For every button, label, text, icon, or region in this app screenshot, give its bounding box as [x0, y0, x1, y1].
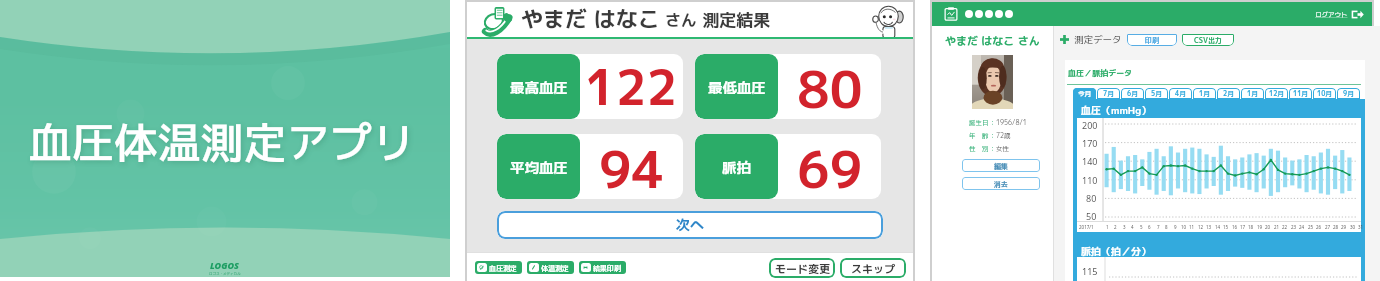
staticText: 11月 — [1293, 89, 1308, 98]
staticText: 80 — [797, 54, 863, 118]
staticText: 2 — [1114, 224, 1117, 230]
staticText: 8 — [1165, 224, 1168, 230]
staticText: 脈拍 — [722, 157, 751, 177]
staticText: 7月 — [1103, 89, 1114, 98]
staticText: 170 — [1082, 137, 1098, 149]
staticText: 16 — [1232, 224, 1238, 230]
staticText: 140 — [1082, 155, 1098, 167]
other: アプリアイコン — [482, 5, 515, 38]
staticText: 誕生日 — [969, 118, 989, 127]
staticText: 21 — [1274, 224, 1280, 230]
staticText: 11 — [1189, 224, 1195, 230]
button[interactable]: CSV出力 — [1182, 34, 1234, 46]
staticText: 29 — [1341, 224, 1347, 230]
staticText: 測定データ — [1074, 33, 1122, 46]
button[interactable]: 6月 — [1121, 88, 1144, 99]
staticText: 編集 — [994, 161, 1008, 171]
staticText: 80 — [1086, 192, 1097, 204]
staticText: 血圧測定 — [489, 263, 517, 272]
staticText: 24 — [1299, 224, 1305, 230]
staticText: 性 別 — [969, 144, 989, 153]
staticText: 26 — [1316, 224, 1322, 230]
staticText: 5月 — [1151, 89, 1162, 98]
staticText: 23 — [1291, 224, 1297, 230]
staticText: 72歳 — [996, 131, 1011, 140]
button[interactable]: 体温測定 — [529, 263, 572, 272]
staticText: 消去 — [994, 179, 1008, 189]
other: キャラクター — [871, 2, 907, 37]
staticText: 結果印刷 — [593, 263, 621, 272]
staticText: 1 — [1106, 224, 1109, 230]
staticText: 今月 — [1078, 89, 1091, 98]
button[interactable]: 印刷 — [1127, 34, 1177, 46]
staticText: 10月 — [1317, 89, 1332, 98]
staticText: 12月 — [1269, 89, 1284, 98]
staticText: 次へ — [676, 215, 704, 235]
button[interactable]: 10月 — [1313, 88, 1336, 99]
staticText: ： — [989, 118, 996, 127]
button[interactable]: 12月 — [1265, 88, 1288, 99]
staticText: やまだ はなこ さん — [945, 33, 1040, 48]
staticText: ロゴス・メディカル — [209, 271, 241, 276]
staticText: 94 — [599, 134, 665, 198]
staticText: 122 — [585, 54, 678, 118]
button[interactable]: 2月 — [1217, 88, 1240, 99]
staticText: 最低血圧 — [708, 77, 766, 97]
other: 追加 — [1060, 35, 1069, 44]
staticText: 7 — [1157, 224, 1160, 230]
button[interactable]: 4月 — [1169, 88, 1192, 99]
staticText: 50 — [1086, 210, 1097, 222]
staticText: 14 — [1215, 224, 1221, 230]
staticText: やまだ はなこ — [521, 3, 660, 34]
button[interactable]: 結果印刷 — [581, 263, 624, 272]
staticText: 5 — [1140, 224, 1143, 230]
button[interactable]: 次へ — [497, 211, 883, 239]
staticText: 200 — [1082, 119, 1098, 131]
staticText: ログアウト — [1315, 10, 1348, 19]
staticText: 30 — [1350, 224, 1356, 230]
button[interactable]: 7月 — [1097, 88, 1120, 99]
staticText: 31 — [1358, 224, 1364, 230]
staticText: 4 — [1131, 224, 1134, 230]
staticText: 27 — [1325, 224, 1331, 230]
button[interactable]: 5月 — [1145, 88, 1168, 99]
staticText: 3 — [1123, 224, 1126, 230]
staticText: 年 齢 — [969, 131, 989, 140]
button[interactable]: 11月 — [1289, 88, 1312, 99]
button[interactable]: 1月 — [1193, 88, 1216, 99]
other: 測定データ — [944, 7, 958, 21]
staticText: 測定結果 — [697, 8, 771, 32]
button[interactable]: スキップ — [840, 258, 906, 278]
staticText: 印刷 — [1145, 35, 1159, 45]
staticText: 19 — [1257, 224, 1263, 230]
button[interactable]: モード変更 — [769, 258, 835, 278]
staticText: ： — [989, 131, 996, 140]
button[interactable]: 9月 — [1337, 88, 1360, 99]
staticText: 血圧／脈拍データ — [1068, 67, 1132, 78]
staticText: 最高血圧 — [510, 77, 568, 97]
button[interactable]: 消去 — [962, 177, 1040, 190]
staticText: 血圧（mmHg） — [1081, 103, 1152, 117]
staticText: 1月 — [1199, 89, 1210, 98]
staticText: LOGOS — [210, 259, 240, 271]
staticText: 110 — [1082, 174, 1098, 186]
button[interactable]: 編集 — [962, 159, 1040, 172]
button[interactable]: 血圧測定 — [477, 263, 520, 272]
staticText: 1月 — [1247, 89, 1258, 98]
staticText: 脈拍（拍／分） — [1081, 244, 1151, 258]
button[interactable]: 今月 — [1073, 88, 1096, 99]
staticText: 69 — [797, 134, 863, 198]
staticText: 体温測定 — [541, 263, 569, 272]
staticText: モード変更 — [775, 261, 830, 276]
staticText: 6月 — [1127, 89, 1138, 98]
staticText: 115 — [1082, 265, 1098, 277]
staticText: さん — [660, 9, 697, 31]
staticText: 13 — [1206, 224, 1212, 230]
staticText: 2017/1 — [1079, 224, 1094, 230]
button[interactable]: 1月 — [1241, 88, 1264, 99]
staticText: 12 — [1198, 224, 1204, 230]
staticText: 17 — [1240, 224, 1246, 230]
staticText: 平均血圧 — [510, 157, 568, 177]
staticText: ： — [989, 144, 996, 153]
staticText: 血圧体温測定アプリ — [29, 112, 416, 171]
